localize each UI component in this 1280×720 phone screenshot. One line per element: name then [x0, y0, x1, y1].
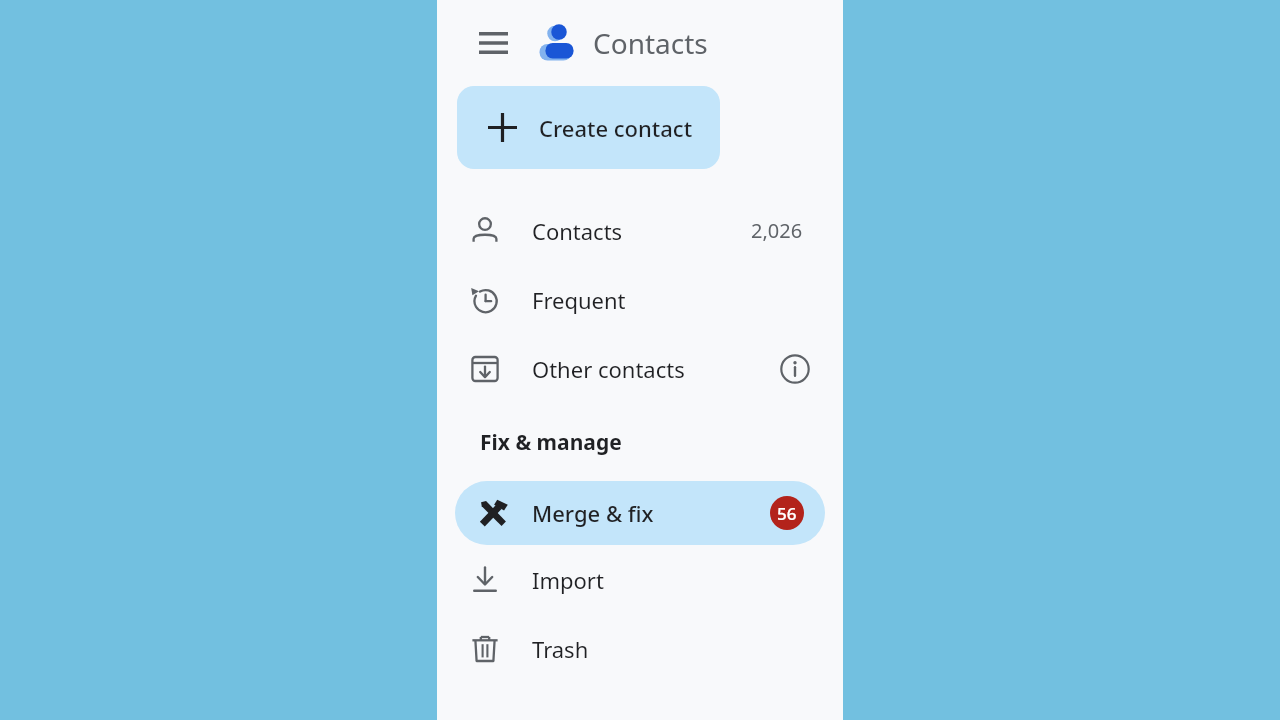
staticText: 56 [777, 502, 797, 525]
button[interactable]: Frequent [437, 265, 843, 334]
staticText: Trash [532, 634, 589, 664]
staticText: Other contacts [532, 354, 685, 384]
staticText: Contacts [532, 216, 623, 246]
button[interactable]: Open navigation menu [469, 19, 517, 67]
staticText: Create contact [539, 113, 693, 143]
staticText: 2,026 [751, 217, 803, 244]
staticText: Fix & manage [480, 428, 622, 457]
button[interactable]: Trash [437, 614, 843, 683]
staticText: Contacts [593, 24, 708, 62]
button[interactable]: Contacts [437, 196, 843, 265]
button[interactable]: About other contacts [775, 349, 815, 389]
button[interactable]: Create contact [457, 86, 720, 169]
button[interactable]: Other contacts [437, 334, 843, 403]
staticText: Import [532, 565, 604, 595]
staticText: Frequent [532, 285, 626, 315]
button[interactable]: Merge & fix [455, 481, 825, 545]
button[interactable]: Import [437, 545, 843, 614]
staticText: Merge & fix [532, 498, 654, 528]
